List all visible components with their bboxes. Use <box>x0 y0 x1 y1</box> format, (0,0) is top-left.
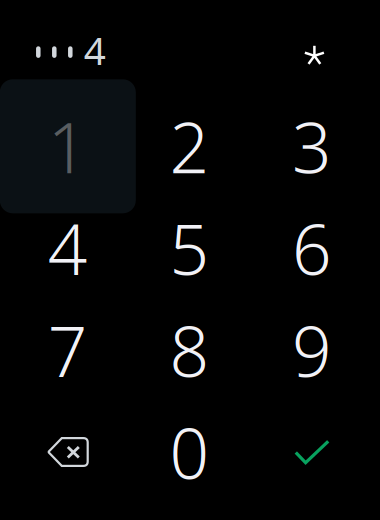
staticText: 3 <box>292 100 332 192</box>
button[interactable]: 7 <box>0 283 136 417</box>
staticText: 1 <box>48 100 88 192</box>
staticText: 4 <box>84 24 106 75</box>
button[interactable]: 1 <box>0 79 136 213</box>
button[interactable]: 5 <box>121 181 257 315</box>
button[interactable]: Delete <box>0 385 136 519</box>
staticText: 5 <box>169 202 209 294</box>
button[interactable]: 2 <box>121 79 257 213</box>
button[interactable]: 3 <box>244 79 380 213</box>
staticText: 2 <box>169 100 209 192</box>
button[interactable]: Confirm passcode <box>244 385 380 519</box>
button[interactable]: 9 <box>244 283 380 417</box>
staticText: 8 <box>169 304 209 396</box>
button[interactable]: 8 <box>121 283 257 417</box>
button[interactable]: 4 <box>0 181 136 315</box>
button[interactable]: Options <box>292 34 336 78</box>
staticText: 7 <box>48 304 88 396</box>
staticText: 9 <box>292 304 332 396</box>
button[interactable]: 6 <box>244 181 380 315</box>
staticText: 6 <box>292 202 332 294</box>
staticText: 4 <box>48 202 88 294</box>
staticText: 0 <box>169 406 209 498</box>
button[interactable]: 0 <box>121 385 257 519</box>
